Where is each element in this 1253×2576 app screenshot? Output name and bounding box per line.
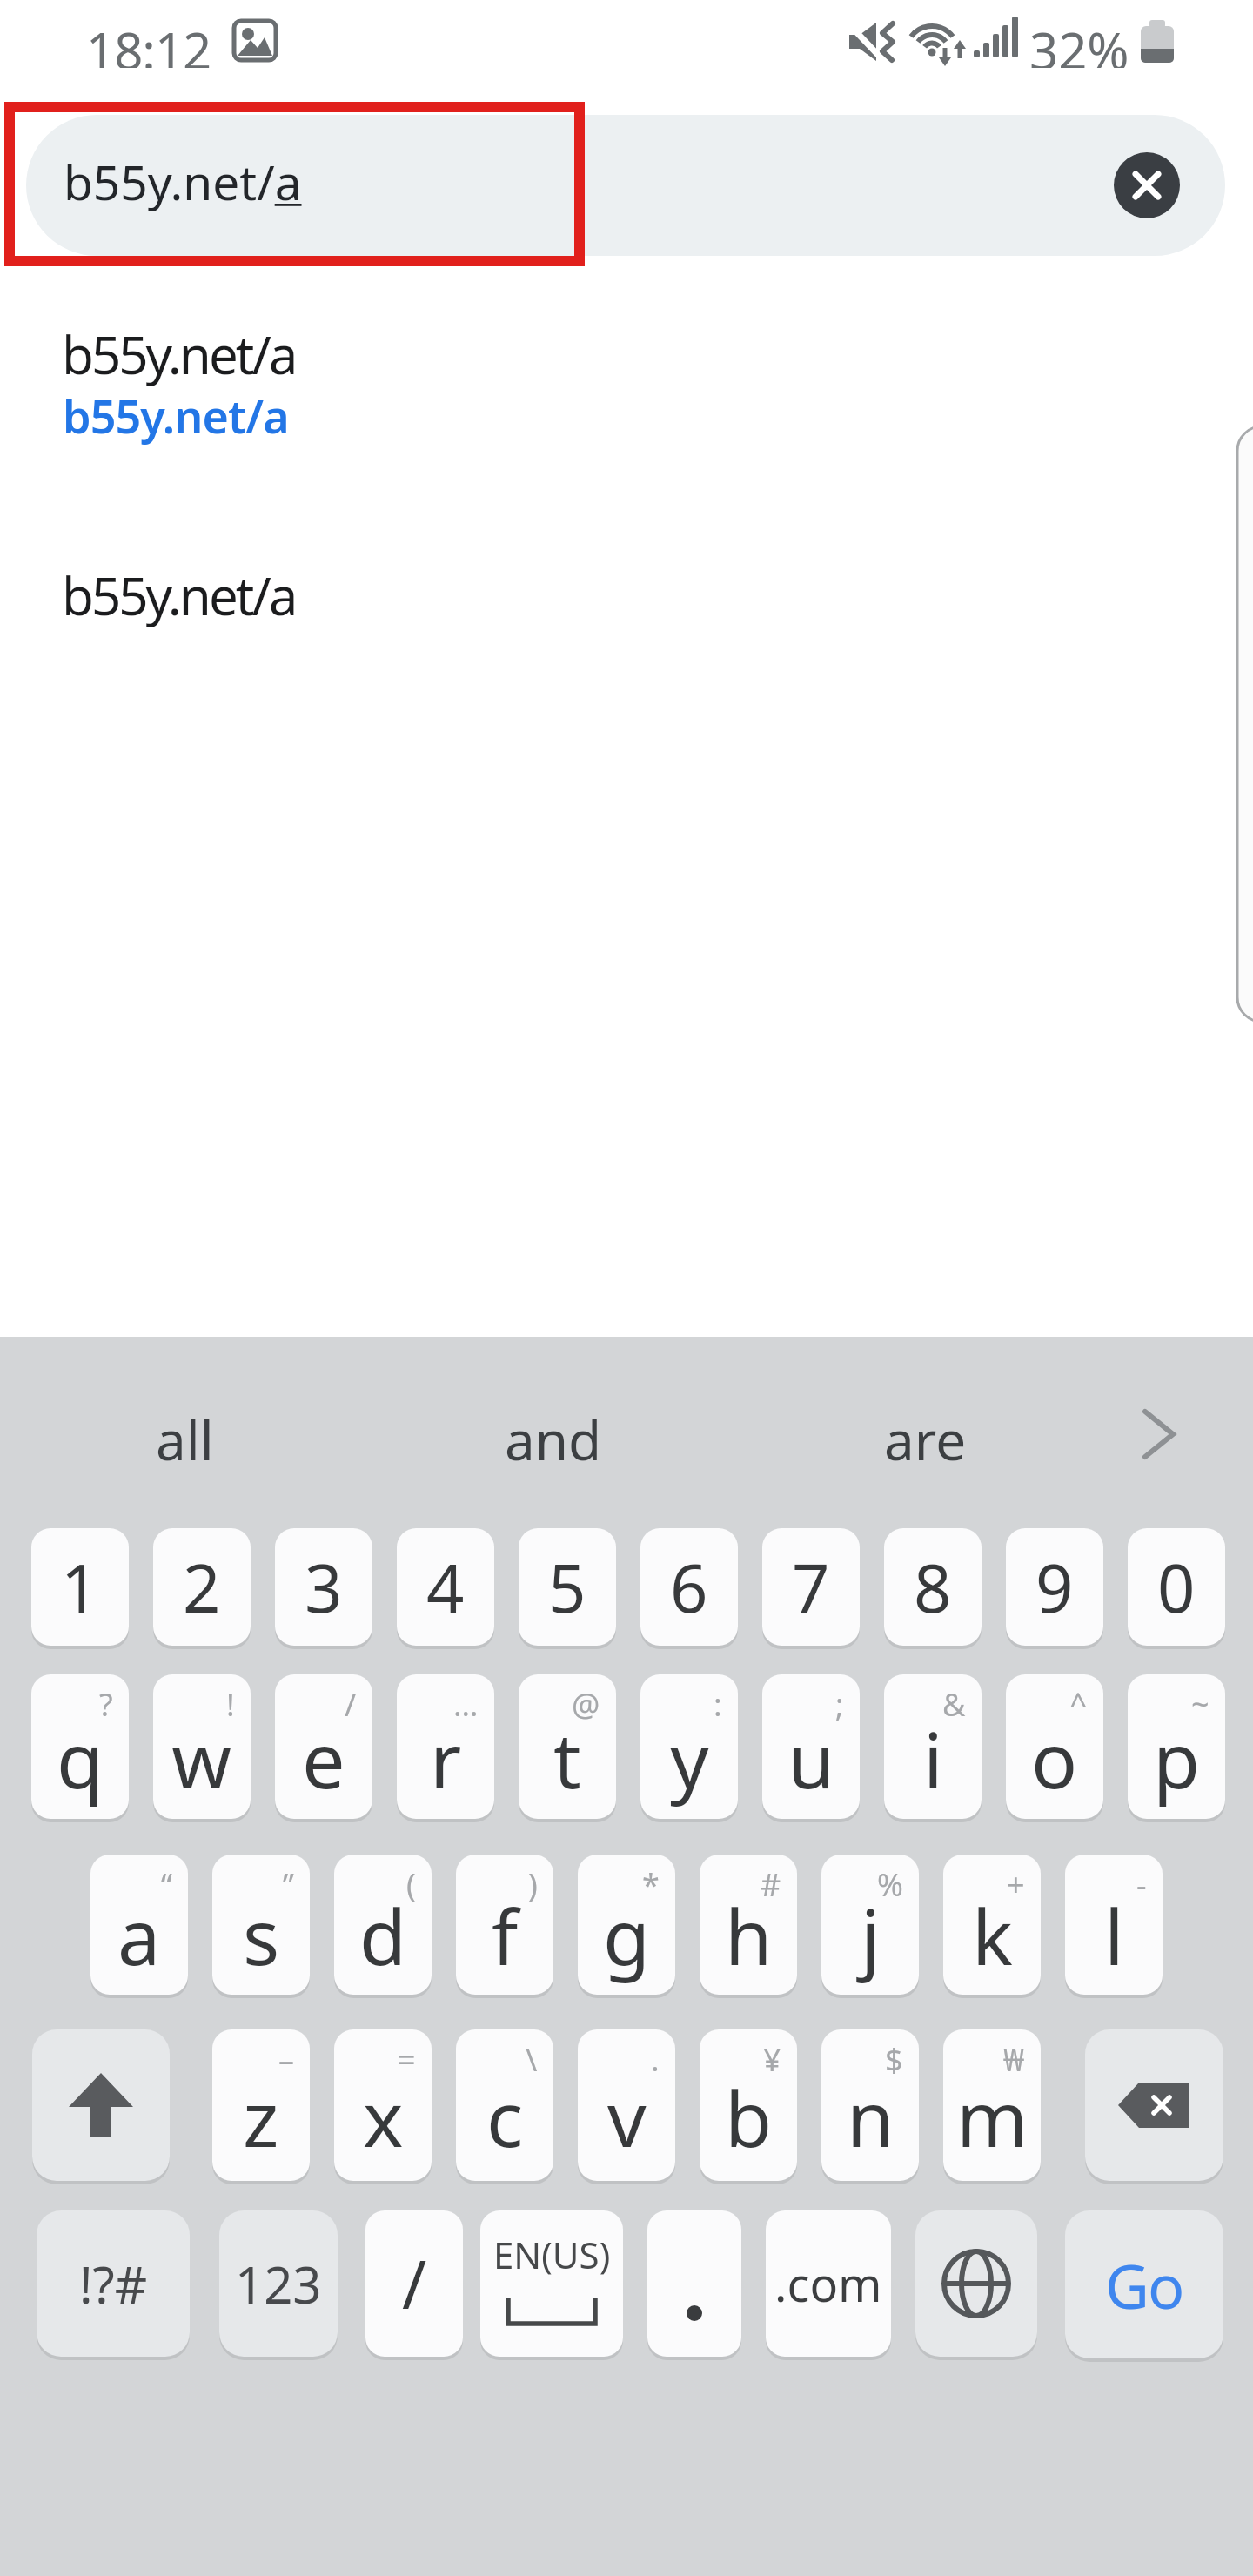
button[interactable]: 5 [519, 1528, 616, 1646]
button[interactable]: 8 [884, 1528, 982, 1646]
staticText: b [725, 2065, 773, 2170]
staticText: g [603, 1883, 651, 1988]
button[interactable]: j [821, 1855, 919, 1995]
button[interactable]: 0 [1128, 1528, 1225, 1646]
staticText: 5 [548, 1542, 586, 1633]
staticText: ~ [1191, 1683, 1209, 1726]
staticText: 1 [61, 1542, 99, 1633]
button[interactable]: !?# [37, 2210, 190, 2357]
staticText: r [430, 1707, 462, 1811]
button[interactable]: Go [1065, 2210, 1223, 2358]
staticText: and [505, 1403, 602, 1466]
staticText: b55y.net/a [62, 560, 296, 629]
button[interactable] [647, 2210, 741, 2357]
staticText: q [57, 1707, 104, 1811]
button[interactable]: .com [766, 2210, 891, 2357]
staticText: ) [528, 1863, 538, 1906]
button[interactable]: 9 [1006, 1528, 1103, 1646]
button[interactable]: i [884, 1674, 982, 1819]
staticText: p [1153, 1707, 1201, 1811]
staticText: y [670, 1707, 709, 1811]
staticText: $ [885, 2038, 903, 2081]
staticText: a [117, 1883, 161, 1988]
staticText: ₩ [1003, 2038, 1025, 2081]
staticText: m [956, 2065, 1029, 2170]
button[interactable]: x [334, 2029, 432, 2181]
button[interactable]: c [456, 2029, 553, 2181]
button[interactable]: l [1065, 1855, 1163, 1995]
button[interactable] [1085, 2029, 1223, 2181]
button[interactable]: z [212, 2029, 310, 2181]
staticText: * [642, 1863, 660, 1906]
staticText: j [861, 1883, 881, 1988]
staticText: n [847, 2065, 895, 2170]
staticText: 6 [670, 1542, 708, 1633]
button[interactable]: 3 [275, 1528, 372, 1646]
staticText: - [1136, 1863, 1147, 1906]
staticText: 18:12 [86, 16, 211, 68]
staticText: # [761, 1863, 781, 1906]
button[interactable] [1114, 152, 1180, 218]
button[interactable]: EN(US) [480, 2210, 623, 2357]
staticText: o [1031, 1707, 1078, 1811]
staticText: h [725, 1883, 773, 1988]
staticText: ; [835, 1683, 844, 1726]
button[interactable]: t [519, 1674, 616, 1819]
button[interactable]: 7 [762, 1528, 860, 1646]
button[interactable]: h [700, 1855, 797, 1995]
staticText: / [402, 2238, 427, 2329]
button[interactable]: d [334, 1855, 432, 1995]
button[interactable]: 123 [219, 2210, 338, 2357]
staticText: Go [1105, 2244, 1183, 2326]
button[interactable]: f [456, 1855, 553, 1995]
staticText: 3 [305, 1542, 343, 1633]
button[interactable] [915, 2210, 1037, 2357]
button[interactable]: 6 [640, 1528, 738, 1646]
staticText: 4 [426, 1542, 465, 1633]
staticText: EN(US) [493, 2230, 611, 2279]
button[interactable]: m [943, 2029, 1041, 2181]
staticText: \ [526, 2038, 538, 2081]
button[interactable]: n [821, 2029, 919, 2181]
button[interactable]: 2 [153, 1528, 251, 1646]
button[interactable]: u [762, 1674, 860, 1819]
button[interactable]: b [700, 2029, 797, 2181]
button[interactable]: q [31, 1674, 129, 1819]
button[interactable]: v [578, 2029, 675, 2181]
button[interactable]: / [365, 2210, 463, 2357]
staticText: ” [283, 1863, 294, 1906]
button[interactable]: g [578, 1855, 675, 1995]
button[interactable]: b55y.net/a [26, 115, 1225, 256]
button[interactable] [1122, 1403, 1196, 1466]
button[interactable]: w [153, 1674, 251, 1819]
button[interactable]: o [1006, 1674, 1103, 1819]
staticText: 7 [792, 1542, 830, 1633]
button[interactable]: e [275, 1674, 372, 1819]
staticText: ? [99, 1683, 113, 1726]
staticText: are [884, 1403, 967, 1466]
button[interactable]: s [212, 1855, 310, 1995]
button[interactable]: y [640, 1674, 738, 1819]
staticText: u [787, 1707, 835, 1811]
staticText: f [492, 1883, 519, 1988]
staticText: 9 [1035, 1542, 1074, 1633]
staticText: … [453, 1683, 479, 1726]
staticText: = [398, 2038, 416, 2081]
staticText: ( [406, 1863, 416, 1906]
button[interactable]: r [397, 1674, 494, 1819]
staticText: t [553, 1707, 581, 1811]
button[interactable]: k [943, 1855, 1041, 1995]
staticText: b55y.net/a [63, 385, 289, 446]
staticText: v [607, 2065, 647, 2170]
button[interactable]: 4 [397, 1528, 494, 1646]
staticText: z [243, 2065, 279, 2170]
staticText: !?# [79, 2250, 148, 2318]
button[interactable]: 1 [31, 1528, 129, 1646]
button[interactable]: a [90, 1855, 188, 1995]
staticText: 8 [914, 1542, 952, 1633]
staticText: .com [774, 2251, 882, 2316]
button[interactable]: p [1128, 1674, 1225, 1819]
staticText: d [359, 1883, 407, 1988]
button[interactable] [32, 2029, 170, 2181]
staticText: ^ [1069, 1683, 1088, 1726]
